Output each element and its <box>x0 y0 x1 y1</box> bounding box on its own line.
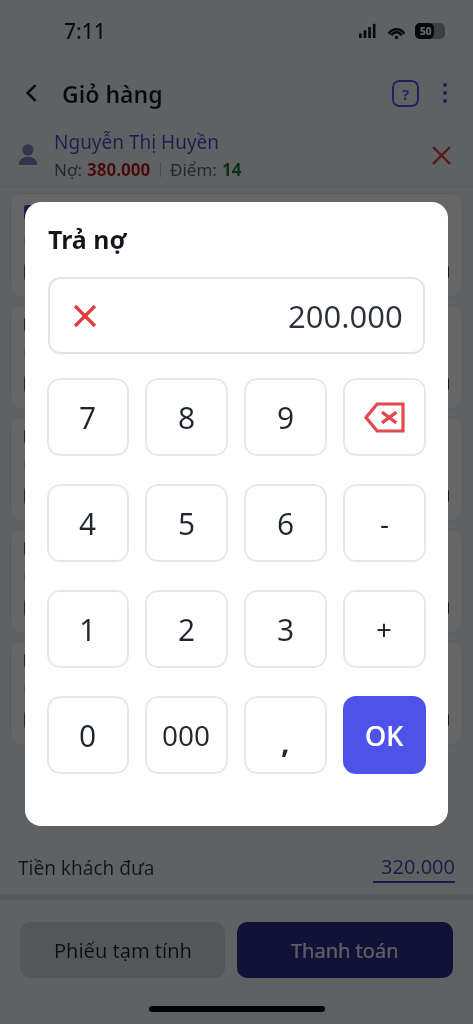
button[interactable]: 8 <box>145 378 228 456</box>
button[interactable]: Thanh toán <box>237 922 453 978</box>
button[interactable]: OK <box>343 696 426 774</box>
button[interactable]: 6 <box>244 484 327 562</box>
button[interactable]: 2 <box>145 590 228 668</box>
button[interactable]: , <box>244 696 327 774</box>
staticText: 4 <box>79 503 97 544</box>
staticText: OK <box>365 717 404 754</box>
button[interactable]: 7 <box>47 378 129 456</box>
button[interactable]: Phiếu tạm tính <box>20 922 225 978</box>
button[interactable] <box>10 305 463 409</box>
staticText: 6 <box>277 503 295 544</box>
staticText: ? <box>402 84 410 104</box>
staticText: Giỏ hàng <box>62 78 163 109</box>
staticText: 200.000 <box>288 295 403 337</box>
button[interactable]: 1 <box>47 590 129 668</box>
staticText: 320.000 <box>381 853 455 880</box>
staticText: Trả nợ <box>48 222 127 256</box>
button[interactable]: Backspace <box>343 378 426 456</box>
staticText: 000 <box>162 716 211 754</box>
other: Clear amount <box>70 301 100 331</box>
staticText: 7 <box>79 397 97 438</box>
button[interactable] <box>10 417 463 521</box>
button[interactable]: 0 <box>47 696 129 774</box>
staticText: 3 <box>277 609 295 650</box>
staticText: Tiền khách đưa <box>18 855 155 881</box>
button[interactable]: 3 <box>244 590 327 668</box>
staticText: Phiếu tạm tính <box>54 937 192 964</box>
button[interactable]: 4 <box>47 484 129 562</box>
button[interactable]: 5 <box>145 484 228 562</box>
button[interactable]: More options <box>425 73 465 113</box>
button[interactable]: 9 <box>244 378 327 456</box>
button[interactable]: Nguyễn Thị Huyền <box>14 124 459 186</box>
button[interactable]: - <box>343 484 426 562</box>
staticText: - <box>380 504 390 542</box>
staticText: Nguyễn Thị Huyền <box>54 129 220 155</box>
button[interactable] <box>10 193 463 297</box>
button[interactable] <box>10 641 463 745</box>
staticText: 8 <box>178 397 196 438</box>
button[interactable]: Back <box>10 71 54 115</box>
button[interactable]: + <box>343 590 426 668</box>
staticText: Nợ: <box>54 158 87 181</box>
staticText: 14 <box>222 158 242 181</box>
button[interactable]: Remove customer <box>423 137 459 173</box>
staticText: 7:11 <box>64 17 106 46</box>
button[interactable] <box>10 529 463 633</box>
staticText: Điểm: <box>170 158 222 181</box>
button[interactable]: Clear amount <box>48 277 425 354</box>
staticText: 1 <box>79 609 97 650</box>
staticText: 5 <box>178 503 196 544</box>
staticText: 2 <box>178 609 196 650</box>
staticText: , <box>281 721 290 762</box>
button[interactable]: 000 <box>145 696 228 774</box>
staticText: 380.000 <box>87 158 151 181</box>
staticText: + <box>376 610 393 648</box>
staticText: 50 <box>420 24 432 38</box>
button[interactable]: Help <box>385 73 425 113</box>
staticText: 0 <box>79 715 97 756</box>
staticText: 9 <box>277 397 295 438</box>
staticText: Thanh toán <box>291 937 399 964</box>
